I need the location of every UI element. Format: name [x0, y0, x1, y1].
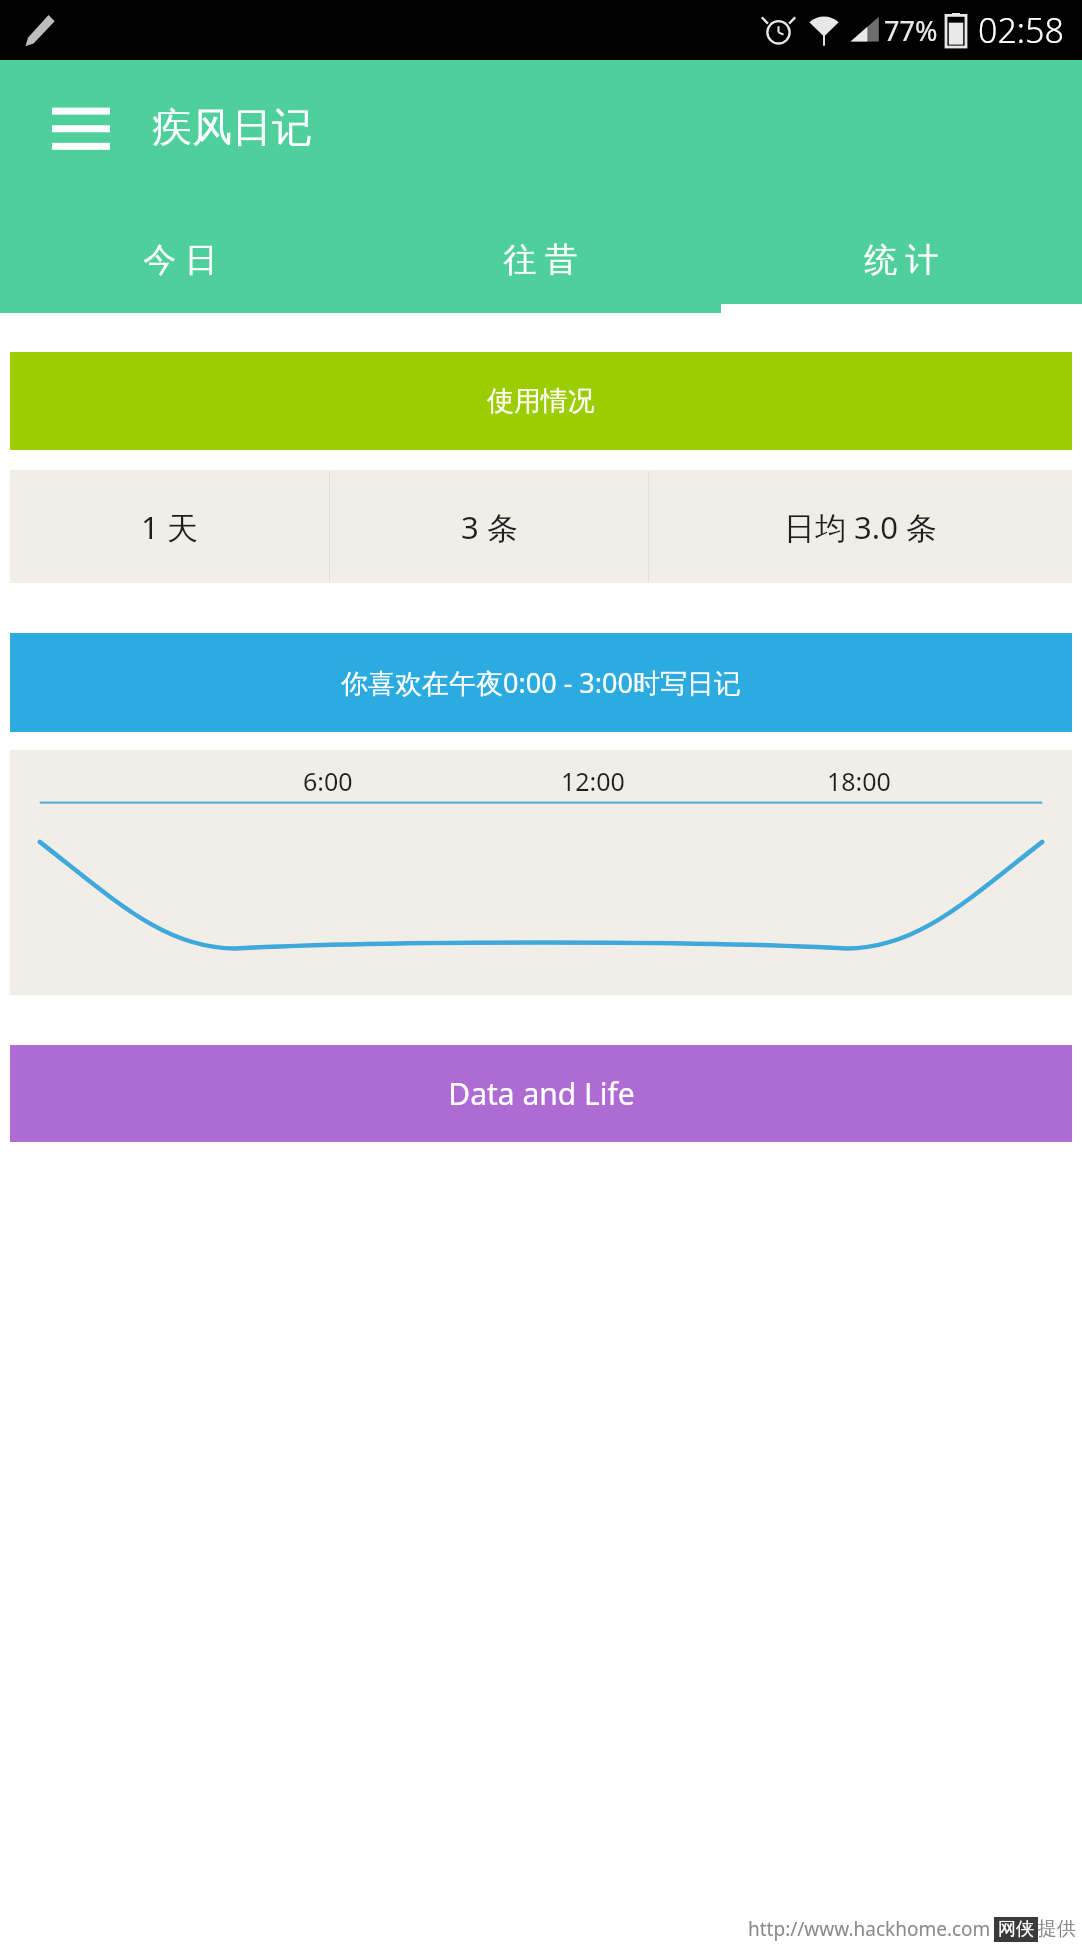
- staticText: 你喜欢在午夜0:00 - 3:00时写日记: [341, 664, 741, 701]
- staticText: 1 天: [141, 506, 198, 548]
- staticText: 网侠: [998, 1918, 1034, 1941]
- staticText: 今 日: [143, 236, 218, 281]
- staticText: 77%: [884, 12, 938, 49]
- button[interactable]: 日均 3.0 条: [649, 470, 1072, 583]
- button[interactable]: 统 计: [721, 203, 1082, 313]
- button[interactable]: Data and Life: [10, 1045, 1072, 1142]
- staticText: 02:58: [978, 7, 1064, 53]
- staticText: 3 条: [461, 506, 518, 548]
- button[interactable]: 今 日: [0, 203, 360, 313]
- staticText: 疾风日记: [152, 102, 312, 152]
- button[interactable]: 使用情况: [10, 352, 1072, 450]
- staticText: 18:00: [827, 764, 891, 798]
- staticText: 日均 3.0 条: [784, 506, 937, 548]
- button[interactable]: 1 天: [10, 470, 329, 583]
- button[interactable]: Open navigation menu: [52, 102, 110, 152]
- staticText: 统 计: [864, 236, 939, 281]
- staticText: 提供: [1038, 1917, 1076, 1941]
- staticText: 6:00: [303, 764, 353, 798]
- staticText: http://www.hackhome.com: [748, 1916, 991, 1942]
- staticText: Data and Life: [448, 1073, 635, 1114]
- staticText: 12:00: [561, 764, 625, 798]
- staticText: 使用情况: [487, 384, 595, 418]
- button[interactable]: 往 昔: [360, 203, 721, 313]
- staticText: 往 昔: [503, 236, 578, 281]
- button[interactable]: 你喜欢在午夜0:00 - 3:00时写日记: [10, 633, 1072, 732]
- button[interactable]: 3 条: [330, 470, 648, 583]
- button[interactable]: 6:00: [10, 750, 1072, 995]
